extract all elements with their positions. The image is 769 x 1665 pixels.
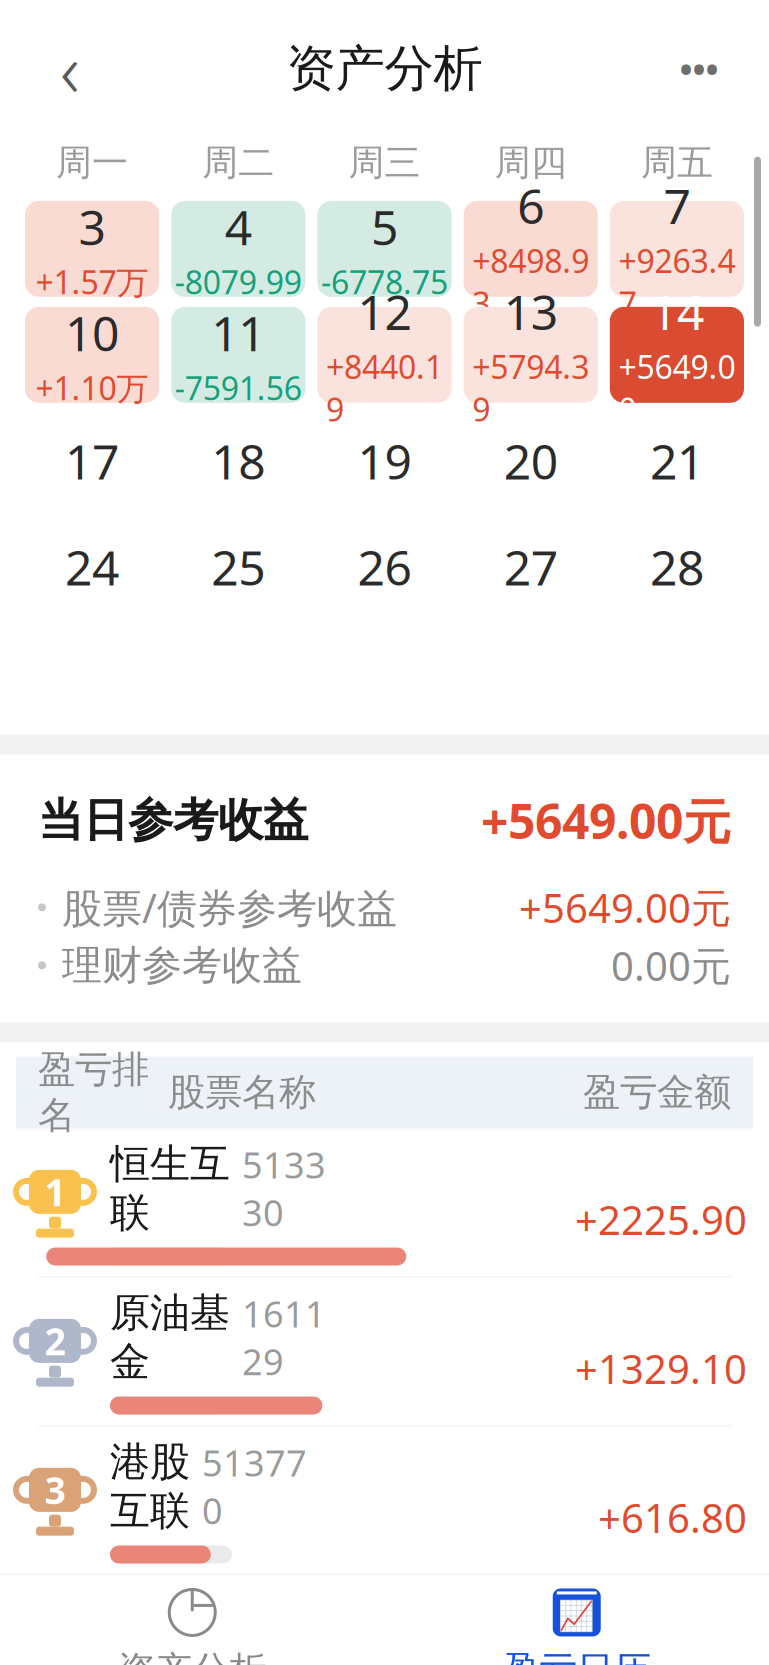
staticText: 20 (504, 429, 558, 493)
staticText: 26 (357, 535, 411, 599)
staticText: 12 (357, 279, 411, 343)
staticText: +2225.90 (575, 1193, 747, 1246)
staticText: 7 (663, 173, 690, 237)
staticText: 资产分析 (118, 1647, 266, 1665)
button[interactable]: 19 (317, 413, 452, 509)
button[interactable]: 25 (171, 519, 305, 615)
button[interactable]: 📈 (384, 1575, 769, 1665)
button[interactable]: 资产分析 (0, 1575, 384, 1665)
staticText: +5649.00元 (519, 881, 731, 934)
staticText: 11 (211, 301, 265, 364)
button[interactable]: 3 (0, 1426, 769, 1574)
staticText: -6778.75 (321, 260, 448, 303)
staticText: +1.10万 (36, 366, 149, 409)
staticText: 📈 (558, 1600, 595, 1633)
staticText: 2 (44, 1316, 65, 1366)
staticText: +1329.10 (575, 1342, 747, 1395)
staticText: 盈亏日历 (503, 1647, 651, 1665)
staticText: 27 (504, 535, 558, 599)
button[interactable]: 返回 (30, 29, 110, 109)
button[interactable]: 7 (610, 201, 744, 297)
staticText: 周五 (641, 141, 713, 185)
staticText: 3 (79, 195, 106, 258)
staticText: 6 (517, 173, 544, 237)
staticText: 当日参考收益 (38, 793, 308, 848)
button[interactable]: 13 (464, 307, 598, 403)
staticText: ••• (679, 46, 718, 92)
button[interactable]: 28 (610, 519, 744, 615)
button[interactable]: 3 (25, 201, 159, 297)
button[interactable]: 12 (317, 307, 452, 403)
button[interactable]: 14 (610, 307, 744, 403)
staticText: 周二 (202, 141, 274, 185)
staticText: 周四 (495, 141, 567, 185)
staticText: 股票名称 (168, 1069, 316, 1115)
staticText: +5649.00元 (481, 789, 731, 852)
staticText: 盈亏排名 (38, 1046, 149, 1138)
staticText: 19 (357, 429, 411, 493)
button[interactable]: 4 (171, 201, 305, 297)
staticText: 1 (44, 1167, 65, 1217)
staticText: 513330 (242, 1141, 326, 1236)
staticText: +616.80 (598, 1491, 747, 1544)
staticText: 5 (371, 195, 398, 258)
staticText: 10 (65, 301, 119, 364)
staticText: 原油基金 (110, 1288, 230, 1386)
staticText: 0.00元 (611, 939, 731, 992)
staticText: +8440.19 (326, 345, 443, 430)
staticText: ‹ (60, 19, 80, 118)
staticText: 3 (44, 1465, 65, 1515)
staticText: 资产分析 (286, 38, 482, 99)
button[interactable]: 1 (0, 1128, 769, 1276)
staticText: 21 (650, 429, 704, 493)
button[interactable]: 24 (25, 519, 159, 615)
staticText: 盈亏金额 (583, 1069, 731, 1115)
staticText: -7591.56 (175, 366, 302, 409)
button[interactable]: 20 (464, 413, 598, 509)
staticText: 周一 (56, 141, 128, 185)
button[interactable]: 27 (464, 519, 598, 615)
staticText: +1.57万 (36, 260, 149, 303)
button[interactable]: 18 (171, 413, 305, 509)
staticText: 513770 (202, 1439, 307, 1534)
button[interactable]: 21 (610, 413, 744, 509)
button[interactable]: 5 (317, 201, 452, 297)
staticText: +9263.47 (618, 239, 735, 324)
button[interactable]: 更多 (659, 29, 739, 109)
button[interactable]: 6 (464, 201, 598, 297)
staticText: 13 (504, 279, 558, 343)
staticText: 18 (211, 429, 265, 493)
staticText: 港股互联 (110, 1437, 190, 1535)
staticText: 14 (650, 279, 704, 343)
staticText: 17 (65, 429, 119, 493)
staticText: 161129 (242, 1290, 326, 1385)
button[interactable]: 26 (317, 519, 452, 615)
staticText: +5649.00 (618, 345, 735, 430)
staticText: +5794.39 (472, 345, 589, 430)
button[interactable]: 11 (171, 307, 305, 403)
staticText: 股票/债券参考收益 (62, 881, 397, 934)
staticText: 周三 (348, 141, 420, 185)
button[interactable]: 2 (0, 1277, 769, 1425)
staticText: 28 (650, 535, 704, 599)
staticText: 4 (225, 195, 252, 258)
button[interactable]: 17 (25, 413, 159, 509)
staticText: -8079.99 (175, 260, 302, 303)
staticText: +8498.93 (472, 239, 589, 324)
staticText: 理财参考收益 (62, 941, 302, 990)
staticText: 恒生互联 (110, 1139, 230, 1237)
staticText: 24 (65, 535, 119, 599)
staticText: 25 (211, 535, 265, 599)
button[interactable]: 10 (25, 307, 159, 403)
